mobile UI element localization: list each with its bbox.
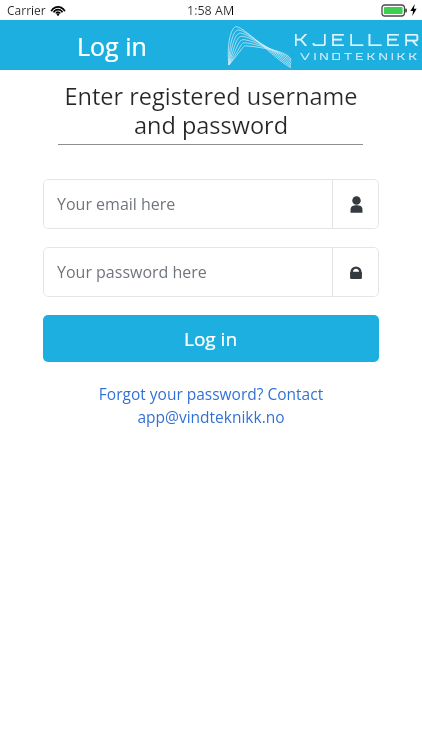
other: Password	[348, 264, 364, 281]
staticText: Your password here	[57, 261, 332, 283]
button[interactable]: Your password here	[43, 247, 379, 297]
other: Username	[348, 196, 365, 213]
button[interactable]: Log in	[43, 315, 379, 362]
staticText: 1:58 AM	[187, 2, 235, 19]
button[interactable]: Forgot your password? Contact app@vindte…	[0, 383, 422, 428]
button[interactable]: Your email here	[43, 179, 379, 229]
staticText: Your email here	[57, 193, 332, 215]
staticText: Log in	[184, 326, 238, 352]
other: Kjeller Vindteknikk	[226, 22, 292, 70]
staticText: VINDTEKNIKK	[300, 50, 421, 63]
staticText: Carrier	[7, 2, 46, 18]
staticText: KJELLER	[294, 28, 422, 50]
staticText: Log in	[77, 29, 147, 63]
staticText: Enter registered username and password	[0, 80, 422, 141]
